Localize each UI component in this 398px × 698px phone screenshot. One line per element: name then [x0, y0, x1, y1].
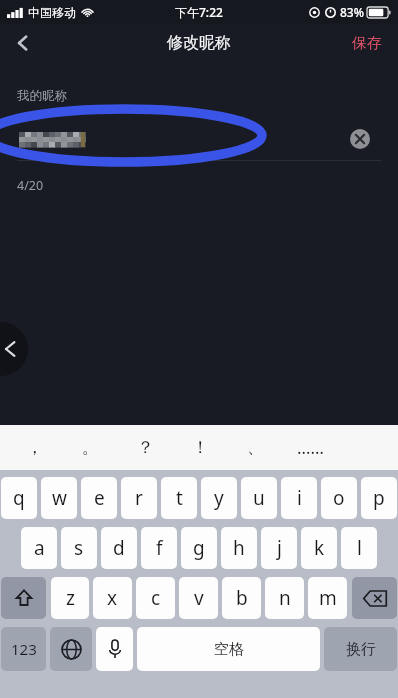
staticText: e	[94, 485, 105, 511]
button[interactable]: Back	[0, 322, 28, 376]
button[interactable]: 123	[1, 627, 46, 671]
button[interactable]: Clear	[0, 118, 398, 160]
staticText: x	[107, 585, 118, 611]
button[interactable]: i	[281, 477, 317, 519]
button[interactable]: Change keyboard	[50, 627, 92, 671]
staticText: q	[13, 485, 25, 511]
button[interactable]: Clear	[348, 127, 372, 151]
staticText: 空格	[214, 640, 244, 659]
staticText: a	[34, 535, 45, 561]
staticText: d	[113, 535, 125, 561]
button[interactable]: v	[179, 577, 218, 619]
button[interactable]: 保存	[344, 30, 390, 57]
button[interactable]: z	[51, 577, 89, 619]
staticText: r	[135, 485, 143, 511]
button[interactable]: p	[361, 477, 397, 519]
button[interactable]: j	[261, 527, 297, 569]
button[interactable]: Backspace	[352, 577, 397, 619]
button[interactable]: y	[201, 477, 237, 519]
button[interactable]: ，	[6, 425, 62, 470]
staticText: 83%	[340, 4, 364, 20]
staticText: 中国移动	[28, 5, 76, 20]
button[interactable]: Voice input	[96, 627, 133, 671]
button[interactable]: f	[141, 527, 177, 569]
staticText: h	[233, 535, 245, 561]
staticText: w	[52, 485, 67, 511]
staticText: 4/20	[17, 177, 44, 194]
button[interactable]: 、	[228, 425, 283, 470]
staticText: b	[236, 585, 248, 611]
button[interactable]: Back	[0, 24, 44, 62]
staticText: s	[74, 535, 84, 561]
button[interactable]: h	[221, 527, 257, 569]
button[interactable]: l	[341, 527, 377, 569]
button[interactable]: r	[121, 477, 157, 519]
staticText: f	[156, 535, 163, 561]
staticText: j	[277, 535, 282, 561]
button[interactable]: a	[21, 527, 57, 569]
button[interactable]: n	[265, 577, 304, 619]
button[interactable]: 换行	[324, 627, 397, 671]
staticText: 修改昵称	[167, 33, 231, 53]
staticText: p	[373, 485, 385, 511]
staticText: o	[333, 485, 345, 511]
button[interactable]: b	[222, 577, 261, 619]
button[interactable]: u	[241, 477, 277, 519]
staticText: ？	[137, 437, 154, 458]
staticText: ，	[26, 437, 43, 458]
staticText: m	[319, 585, 337, 611]
staticText: t	[176, 485, 183, 511]
staticText: 。	[82, 437, 99, 458]
button[interactable]: 空格	[137, 627, 320, 671]
staticText: z	[66, 585, 75, 611]
button[interactable]: c	[136, 577, 175, 619]
button[interactable]: k	[301, 527, 337, 569]
button[interactable]: e	[81, 477, 117, 519]
staticText: v	[194, 585, 204, 611]
staticText: 、	[247, 437, 264, 458]
staticText: i	[297, 485, 302, 511]
staticText: 123	[11, 639, 37, 659]
staticText: y	[214, 485, 224, 511]
button[interactable]: ？	[118, 425, 173, 470]
button[interactable]: ！	[173, 425, 228, 470]
button[interactable]: x	[93, 577, 132, 619]
button[interactable]: w	[41, 477, 77, 519]
button[interactable]: ……	[283, 425, 338, 470]
button[interactable]: t	[161, 477, 197, 519]
button[interactable]: g	[181, 527, 217, 569]
button[interactable]: q	[1, 477, 37, 519]
staticText: 保存	[352, 34, 382, 53]
button[interactable]: s	[61, 527, 97, 569]
staticText: 我的昵称	[17, 88, 67, 104]
staticText: 换行	[346, 640, 376, 659]
staticText: c	[151, 585, 161, 611]
staticText: ！	[192, 437, 209, 458]
staticText: n	[279, 585, 291, 611]
staticText: ……	[297, 436, 324, 459]
staticText: g	[193, 535, 205, 561]
staticText: u	[253, 485, 265, 511]
button[interactable]: Shift	[1, 577, 46, 619]
staticText: 下午7:22	[175, 4, 223, 20]
button[interactable]: 。	[62, 425, 118, 470]
staticText: k	[314, 535, 325, 561]
button[interactable]: o	[321, 477, 357, 519]
button[interactable]: d	[101, 527, 137, 569]
button[interactable]: m	[308, 577, 347, 619]
staticText: l	[357, 535, 362, 561]
